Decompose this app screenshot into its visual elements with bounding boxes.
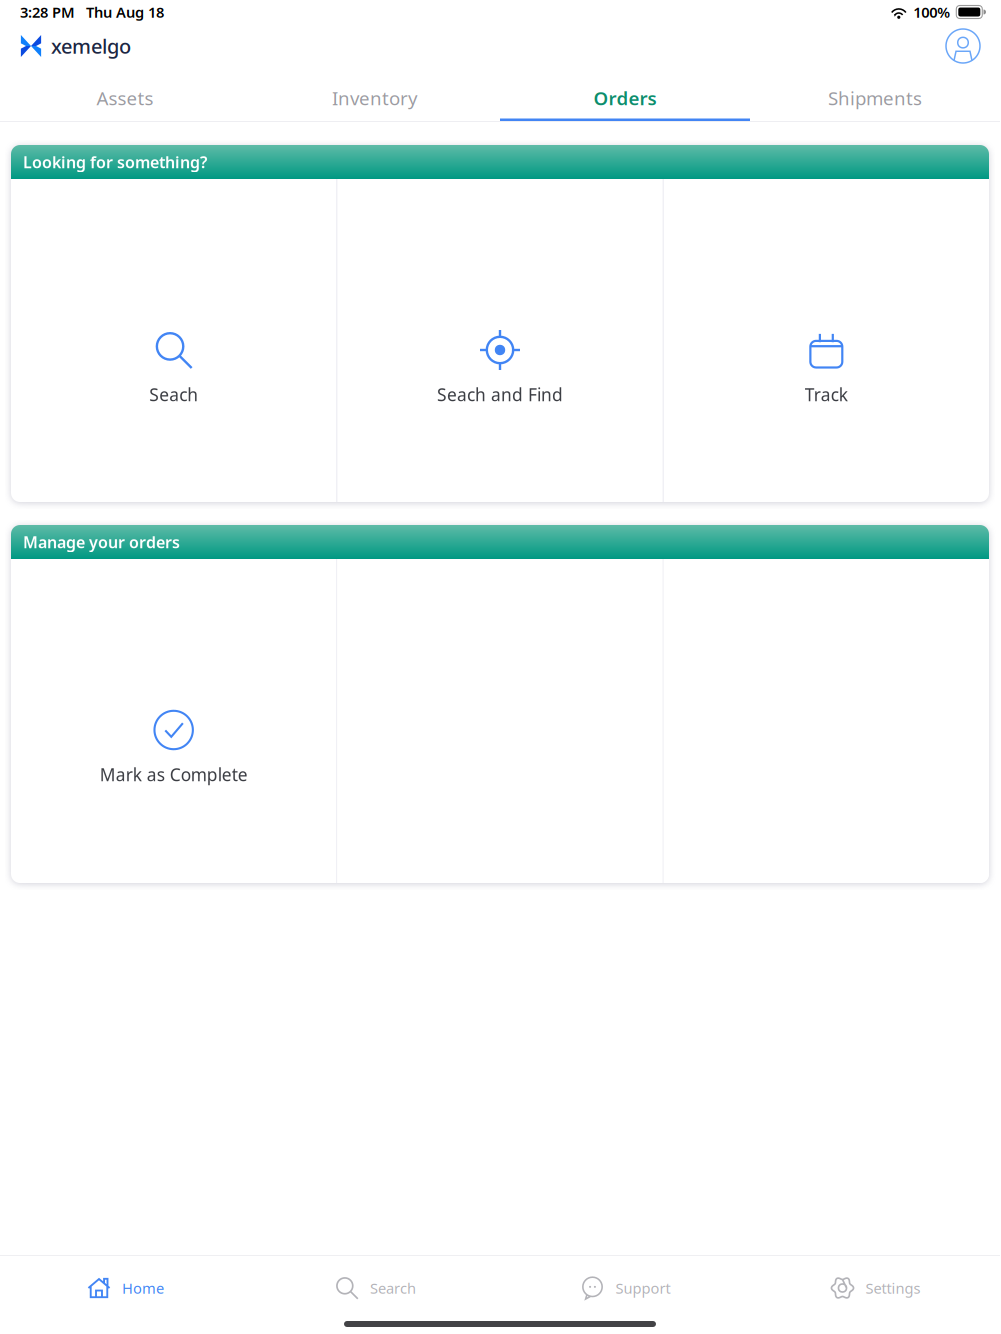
button[interactable]: Track	[664, 179, 989, 502]
button[interactable]: Shipments	[750, 68, 1000, 122]
button[interactable]: Account	[946, 29, 980, 63]
staticText: Manage your orders	[23, 531, 180, 553]
staticText: Settings	[865, 1278, 920, 1298]
staticText: Mark as Complete	[100, 763, 248, 786]
staticText: Assets	[96, 86, 153, 110]
staticText: Inventory	[332, 86, 418, 110]
button[interactable]: Search	[250, 1260, 500, 1316]
button[interactable]: Inventory	[250, 68, 500, 122]
button[interactable]: Settings	[750, 1260, 1000, 1316]
staticText: xemelgo	[51, 33, 131, 59]
button[interactable]: Seach	[11, 179, 336, 502]
staticText: 100%	[913, 2, 950, 22]
button[interactable]: Support	[500, 1260, 750, 1316]
staticText: Home	[122, 1278, 164, 1298]
staticText: Shipments	[828, 86, 922, 110]
button[interactable]: Home	[0, 1260, 250, 1316]
staticText: Seach	[149, 383, 198, 406]
staticText: Orders	[593, 86, 656, 110]
staticText: 3:28 PM	[20, 2, 75, 22]
button[interactable]: xemelgo	[20, 33, 131, 59]
staticText: Support	[615, 1278, 670, 1298]
staticText: Seach and Find	[437, 383, 563, 406]
staticText: Thu Aug 18	[86, 2, 164, 22]
staticText: Looking for something?	[23, 151, 207, 173]
staticText: Search	[370, 1278, 416, 1298]
button[interactable]: Mark as Complete	[11, 559, 336, 883]
button[interactable]: Seach and Find	[337, 179, 663, 502]
button[interactable]: Orders	[500, 68, 750, 122]
button[interactable]: Assets	[0, 68, 250, 122]
staticText: Track	[805, 383, 848, 406]
